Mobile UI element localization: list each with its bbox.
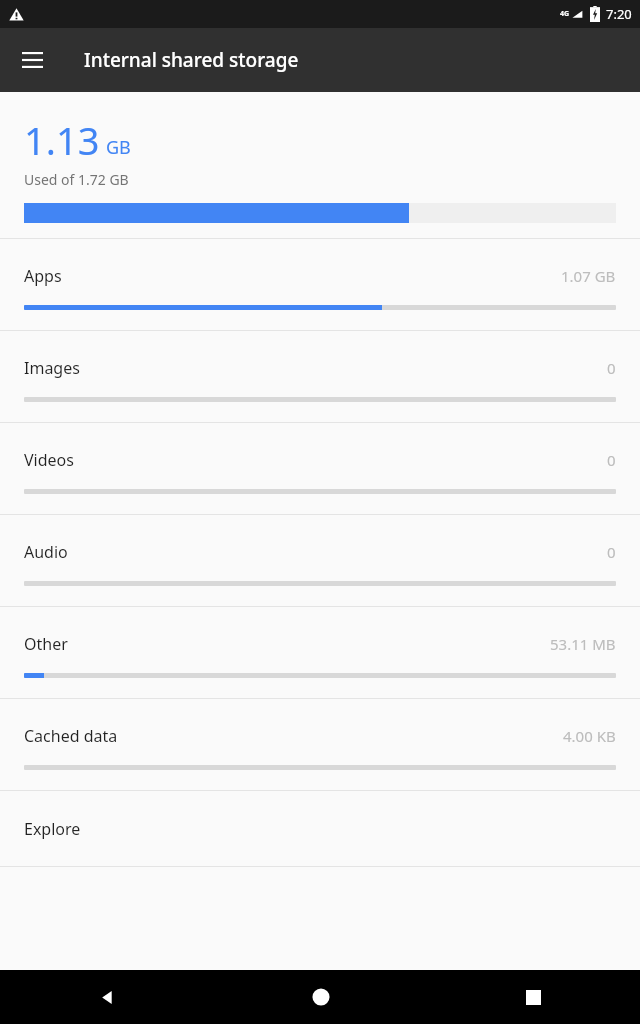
staticText: Other bbox=[24, 633, 550, 655]
button[interactable]: Open navigation menu bbox=[10, 38, 54, 82]
staticText: 1.13 bbox=[24, 114, 100, 166]
staticText: Audio bbox=[24, 541, 607, 563]
staticText: 0 bbox=[607, 542, 616, 562]
staticText: 7:20 bbox=[606, 5, 632, 23]
staticText: Used of 1.72 GB bbox=[24, 170, 129, 189]
staticText: GB bbox=[106, 135, 131, 160]
staticText: Cached data bbox=[24, 725, 563, 747]
staticText: 0 bbox=[607, 358, 616, 378]
button[interactable]: Images bbox=[0, 331, 640, 422]
button[interactable]: Audio bbox=[0, 515, 640, 606]
button[interactable]: Back bbox=[0, 970, 214, 1024]
button[interactable]: Home bbox=[214, 970, 427, 1024]
button[interactable]: Other bbox=[0, 607, 640, 698]
staticText: Apps bbox=[24, 265, 561, 287]
button[interactable]: Recent apps bbox=[427, 970, 640, 1024]
staticText: Videos bbox=[24, 449, 607, 471]
button[interactable]: Apps bbox=[0, 239, 640, 330]
staticText: Explore bbox=[24, 818, 81, 840]
staticText: 53.11 MB bbox=[550, 634, 616, 654]
staticText: 4.00 KB bbox=[563, 726, 616, 746]
staticText: 1.07 GB bbox=[561, 266, 616, 286]
button[interactable]: Cached data bbox=[0, 699, 640, 790]
staticText: Internal shared storage bbox=[84, 47, 299, 73]
staticText: 0 bbox=[607, 450, 616, 470]
staticText: 4G bbox=[560, 9, 570, 19]
button[interactable]: Explore bbox=[0, 791, 640, 866]
button[interactable]: Videos bbox=[0, 423, 640, 514]
staticText: Images bbox=[24, 357, 607, 379]
